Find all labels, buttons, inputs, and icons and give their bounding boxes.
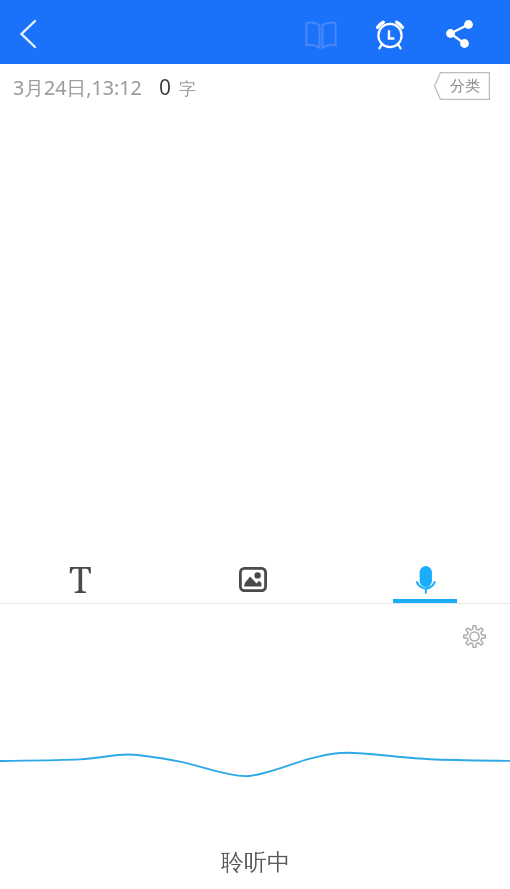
staticText: 字 bbox=[179, 79, 196, 100]
button[interactable]: 分类 bbox=[434, 72, 490, 100]
button[interactable]: Reminder bbox=[366, 10, 414, 58]
button[interactable]: Reading mode bbox=[297, 11, 345, 59]
button[interactable]: Back bbox=[0, 8, 52, 58]
button[interactable]: Insert image bbox=[170, 546, 336, 603]
button[interactable]: Text bbox=[0, 546, 166, 603]
button[interactable]: Share bbox=[435, 10, 483, 58]
staticText: 3月24日,13:12 bbox=[13, 74, 142, 101]
staticText: 分类 bbox=[450, 77, 480, 96]
staticText: T bbox=[69, 553, 92, 603]
button[interactable]: Settings bbox=[461, 623, 488, 650]
staticText: 聆听中 bbox=[221, 848, 290, 877]
button[interactable]: Voice input bbox=[344, 546, 510, 603]
staticText: 0 bbox=[159, 73, 172, 102]
